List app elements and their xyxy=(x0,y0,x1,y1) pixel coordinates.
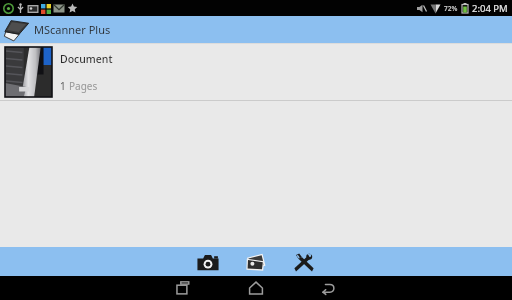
staticText: Document xyxy=(60,52,113,66)
staticText: 72% xyxy=(444,4,458,13)
button[interactable]: Back xyxy=(292,276,364,300)
button[interactable]: Camera xyxy=(193,249,223,275)
staticText: 1 xyxy=(60,79,69,93)
staticText: MScanner Plus xyxy=(34,22,111,37)
staticText: 2:04 PM xyxy=(472,2,508,15)
button[interactable]: Document xyxy=(0,44,512,100)
other: App icon xyxy=(3,17,30,43)
button[interactable]: Home xyxy=(220,276,292,300)
button[interactable]: Tools xyxy=(289,249,319,275)
staticText: Pages xyxy=(69,79,98,93)
button[interactable]: Gallery xyxy=(241,249,271,275)
button[interactable]: Recent apps xyxy=(148,276,220,300)
button[interactable]: App icon xyxy=(0,16,512,43)
